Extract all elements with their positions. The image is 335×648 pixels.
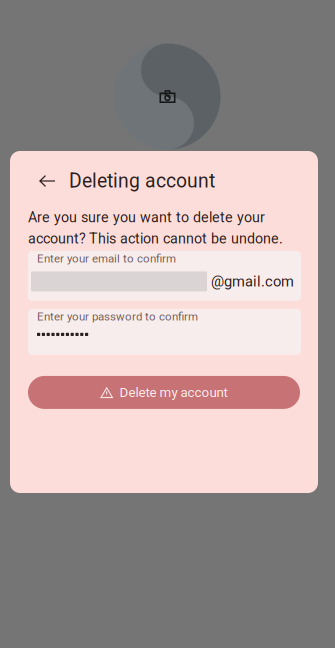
staticText: Enter your email to confirm bbox=[37, 252, 176, 265]
staticText: Delete my account bbox=[119, 385, 227, 400]
staticText: Are you sure you want to delete your acc… bbox=[28, 209, 283, 247]
staticText: Enter your password to confirm bbox=[37, 310, 198, 323]
staticText: @gmail.com bbox=[211, 273, 294, 290]
button[interactable]: Delete my account bbox=[28, 376, 300, 409]
button[interactable]: Back bbox=[33, 168, 62, 194]
staticText: Deleting account bbox=[69, 170, 215, 192]
